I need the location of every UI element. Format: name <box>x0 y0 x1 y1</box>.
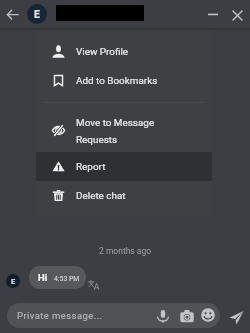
button[interactable]: Voice message <box>154 307 171 324</box>
staticText: Report <box>76 161 106 173</box>
staticText: Delete chat <box>76 190 126 202</box>
button[interactable]: Back <box>3 5 22 24</box>
staticText: E <box>34 8 40 20</box>
button[interactable]: Emoji <box>199 306 216 323</box>
button[interactable]: Translate <box>87 278 99 290</box>
button[interactable]: Hi <box>29 266 86 289</box>
staticText: Private message... <box>17 310 103 321</box>
staticText: Move to Message Requests <box>76 117 155 145</box>
staticText: 2 months ago <box>99 246 152 256</box>
button[interactable]: Report <box>36 152 212 181</box>
button[interactable]: Add to Bookmarks <box>36 66 212 95</box>
button[interactable]: Close <box>228 6 246 24</box>
staticText: View Profile <box>76 46 129 58</box>
staticText: 4:53 PM <box>54 275 80 283</box>
button[interactable]: Delete chat <box>36 181 212 210</box>
button[interactable]: Send <box>228 309 244 325</box>
button[interactable]: View Profile <box>36 37 212 66</box>
button[interactable]: E <box>27 4 47 24</box>
staticText: Add to Bookmarks <box>76 75 158 87</box>
button[interactable]: Move to Message Requests <box>36 109 212 152</box>
button[interactable]: Private message... <box>7 303 220 328</box>
staticText: Hi <box>38 272 48 283</box>
button[interactable]: Camera <box>178 307 195 324</box>
button[interactable]: Minimize <box>204 5 222 23</box>
button[interactable]: E <box>6 274 20 288</box>
staticText: E <box>11 277 16 286</box>
